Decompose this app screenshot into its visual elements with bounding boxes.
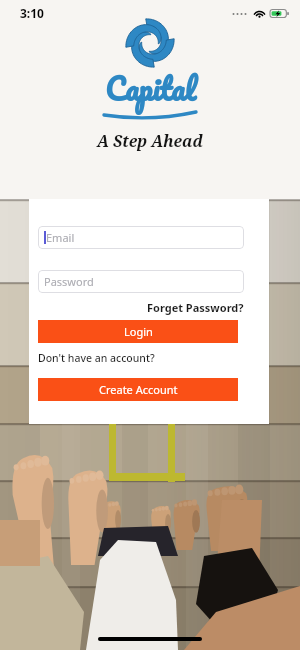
staticText: Password [44,274,94,289]
staticText: Create Account [99,382,178,397]
staticText: 3:10 [20,5,44,21]
button[interactable]: Login [38,320,238,343]
other: Wi-Fi [253,8,266,19]
other: Battery charging [270,8,289,19]
button[interactable]: Create Account [38,378,238,401]
staticText: Email [46,230,75,245]
button[interactable]: Email [38,226,244,249]
staticText: A Step Ahead [97,130,203,152]
staticText: Capital [105,63,196,114]
button[interactable]: Don't have an account? [38,351,155,365]
staticText: Login [124,324,153,339]
button[interactable]: Forget Password? [147,300,244,315]
other: Cellular signal [232,9,250,19]
button[interactable]: Password [38,270,244,293]
